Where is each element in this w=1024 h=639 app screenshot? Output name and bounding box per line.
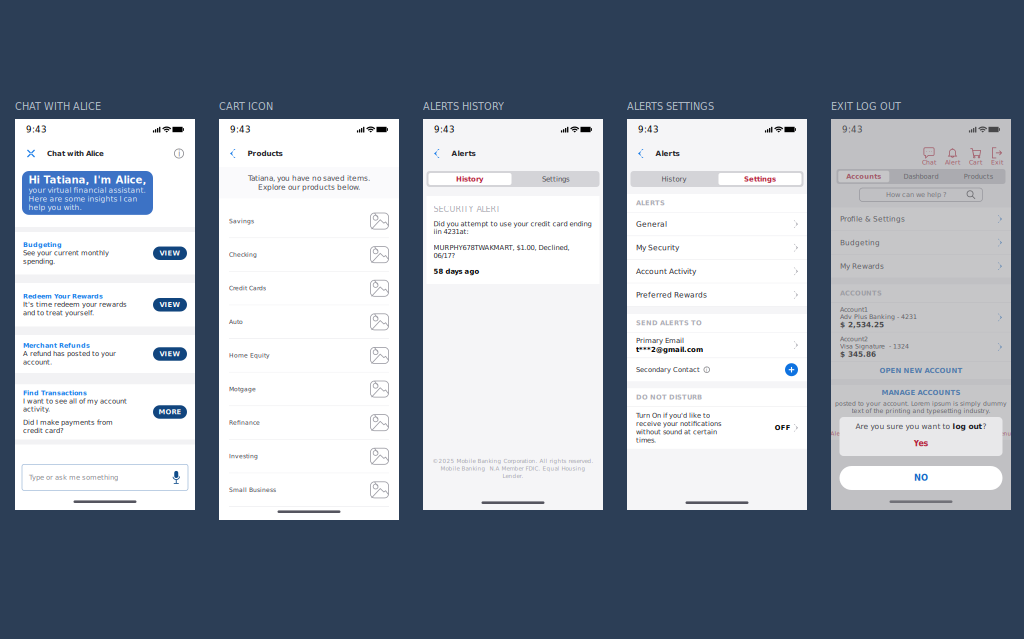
staticText: log out (952, 422, 982, 431)
button[interactable]: Cart (969, 147, 982, 166)
button[interactable]: Back (634, 144, 647, 163)
button[interactable]: Dashboard (895, 171, 946, 182)
button[interactable]: Settings (514, 173, 597, 185)
staticText: Account2 (840, 335, 868, 343)
button[interactable]: Credit Cards (219, 272, 399, 305)
staticText: posted to your account. Lorem ipsum is s… (835, 400, 1007, 407)
button[interactable]: Account1 (831, 303, 1011, 332)
button[interactable]: OPEN NEW ACCOUNT (831, 362, 1011, 379)
staticText: VIEW (159, 249, 180, 257)
staticText: ACCOUNTS (840, 289, 882, 297)
staticText: i (706, 366, 708, 373)
staticText: Refinance (229, 419, 260, 426)
staticText: help you with. (28, 203, 81, 212)
staticText: 9:43 (434, 124, 455, 135)
button[interactable]: Checking (219, 238, 399, 272)
button[interactable]: Products (953, 171, 1004, 182)
button[interactable]: Motgage (219, 373, 399, 406)
staticText: Savings (229, 218, 254, 225)
button[interactable]: History (632, 173, 715, 185)
button[interactable]: Exit (991, 147, 1003, 166)
staticText: Find Transactions (23, 389, 87, 397)
staticText: Alert (945, 159, 960, 166)
button[interactable]: VIEW (153, 298, 187, 311)
staticText: Chat (922, 159, 936, 166)
staticText: Adv Plus Banking - 4231 (840, 313, 917, 320)
staticText: times. (636, 436, 656, 444)
staticText: iin 4231at: (433, 228, 468, 236)
button[interactable]: Savings (219, 205, 399, 238)
staticText: credit card? (23, 427, 64, 435)
staticText: Yes (913, 439, 928, 448)
staticText: text of the printing and typesetting ind… (851, 407, 990, 414)
staticText: My Rewards (840, 262, 884, 270)
button[interactable]: Add secondary contact (785, 363, 798, 376)
button[interactable]: Account2 (831, 332, 1011, 362)
staticText: 9:43 (638, 124, 659, 135)
button[interactable]: Close (23, 144, 39, 162)
button[interactable]: Auto (219, 305, 399, 339)
staticText: Motgage (229, 386, 256, 393)
button[interactable]: Home Equity (219, 339, 399, 373)
button[interactable]: Preferred Rewards (627, 283, 807, 307)
staticText: ALERTS SETTINGS (627, 101, 714, 112)
staticText: and to treat yourself. (23, 309, 94, 317)
staticText: General (636, 220, 667, 228)
staticText: Budgeting (840, 238, 880, 247)
button[interactable]: General (627, 213, 807, 236)
staticText: Dashboard (903, 173, 938, 180)
button[interactable]: History (428, 173, 511, 185)
staticText: MORE (158, 408, 181, 416)
staticText: Tatiana, you have no saved items. (248, 174, 370, 182)
button[interactable]: Account Activity (627, 260, 807, 283)
button[interactable]: NO (839, 466, 1002, 490)
staticText: 9:43 (842, 124, 863, 135)
button[interactable]: Refinance (219, 406, 399, 440)
staticText: Preferred Rewards (636, 291, 707, 299)
button[interactable]: Alert (945, 147, 960, 166)
button[interactable]: Budgeting (831, 231, 1011, 255)
staticText: Profile & Settings (840, 215, 905, 223)
staticText: 06/17? (433, 252, 455, 259)
staticText: NO (914, 473, 928, 483)
button[interactable]: Investing (219, 440, 399, 473)
staticText: Home Equity (229, 352, 270, 359)
staticText: 58 days ago (433, 267, 479, 275)
staticText: My Security (636, 243, 679, 252)
staticText: Chat with Alice (47, 149, 104, 158)
button[interactable]: Turn On if you'd like to (627, 407, 807, 449)
button[interactable]: Back (226, 144, 239, 163)
button[interactable]: My Security (627, 236, 807, 260)
staticText: 9:43 (26, 124, 47, 135)
button[interactable]: VIEW (153, 347, 187, 361)
button[interactable]: Chat (922, 147, 936, 166)
staticText: Small Business (229, 486, 276, 493)
staticText: Products (964, 173, 993, 180)
staticText: Lender. (502, 473, 523, 479)
button[interactable]: Profile & Settings (831, 207, 1011, 231)
button[interactable]: Back (430, 144, 443, 163)
button[interactable]: MORE (153, 405, 187, 419)
button[interactable]: My Rewards (831, 255, 1011, 278)
staticText: CHAT WITH ALICE (15, 101, 101, 112)
staticText: Budgeting (23, 241, 62, 248)
button[interactable]: Primary Email (627, 333, 807, 358)
staticText: t***2@gmail.com (636, 346, 703, 354)
staticText: Account Activity (636, 267, 696, 276)
staticText: Are you sure you want to (855, 422, 952, 431)
button[interactable]: Accounts (838, 171, 889, 182)
button[interactable]: Settings (718, 173, 801, 185)
button[interactable]: Small Business (219, 473, 399, 507)
button[interactable]: Yes (901, 438, 941, 449)
button[interactable]: Information (171, 145, 187, 161)
button[interactable]: VIEW (153, 246, 187, 260)
staticText: History (661, 175, 686, 183)
staticText: account. (23, 358, 52, 366)
staticText: Type or ask me something (29, 473, 118, 481)
staticText: It's time redeem your rewards (23, 301, 127, 308)
staticText: Turn On if you'd like to (636, 411, 710, 419)
staticText: activity. (23, 405, 50, 413)
staticText: Settings (744, 175, 776, 183)
staticText: A refund has posted to your (23, 350, 116, 358)
staticText: Accounts (846, 173, 881, 180)
